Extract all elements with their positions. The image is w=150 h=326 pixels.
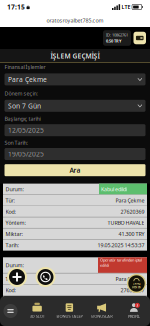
button[interactable]: Add — [7, 267, 27, 287]
staticText: PROFİL — [128, 314, 140, 319]
button[interactable]: BONUS TALEP — [53, 296, 85, 326]
button[interactable]: ID: 10862761 — [103, 30, 131, 46]
staticText: oratosroyalbet785.com — [46, 17, 103, 24]
staticText: Son 7 Gün — [8, 101, 41, 110]
staticText: DESTEK — [132, 285, 141, 289]
staticText: BONUSLAR — [91, 314, 112, 319]
staticText: Ara — [69, 166, 80, 175]
staticText: Para Çekme — [115, 197, 144, 204]
staticText: Durum: — [6, 186, 24, 193]
staticText: 3 — [136, 304, 138, 307]
staticText: Tür: — [6, 275, 15, 282]
button[interactable]: Son 7 Gün — [4, 100, 145, 112]
staticText: CANLI — [132, 282, 140, 285]
staticText: Para Çekme — [8, 75, 47, 84]
button[interactable]: Deposit — [133, 32, 146, 44]
button[interactable]: 3D SLOT — [21, 296, 53, 326]
staticText: Kabul edildi — [101, 186, 127, 193]
staticText: 12/05/2025 — [8, 126, 44, 135]
button[interactable]: Para Çekme — [4, 73, 145, 85]
button[interactable]: BONUSLAR — [85, 296, 118, 326]
staticText: Tarih: — [6, 242, 19, 249]
staticText: TURBO HAVALE — [107, 219, 144, 226]
staticText: BONUS TALEP — [56, 314, 82, 319]
staticText: 27620369 — [120, 208, 144, 215]
staticText: 3D SLOT — [30, 314, 45, 319]
staticText: Durum: — [6, 262, 24, 269]
staticText: 17:15 — [7, 3, 25, 11]
staticText: Tür: — [6, 197, 15, 204]
staticText: LTE — [122, 3, 131, 11]
staticText: 19/05/2025 — [8, 150, 44, 158]
staticText: Son Tarih: — [4, 139, 27, 146]
button[interactable]: Live support — [127, 274, 146, 293]
staticText: İŞLEM GEÇMİŞİ — [50, 52, 99, 60]
staticText: 41.300 TRY — [118, 230, 144, 238]
staticText: 19.05.2025 14:53:37 — [97, 242, 144, 249]
staticText: Miktar: — [6, 230, 23, 238]
button[interactable]: Menu — [0, 296, 21, 326]
staticText: Para Çekme — [115, 275, 144, 282]
staticText: Finansal İşlemler — [4, 63, 45, 71]
staticText: Yöntem: — [6, 219, 26, 226]
staticText: Başlangıç tarihi — [4, 115, 40, 122]
staticText: Kod: — [6, 208, 16, 215]
button[interactable]: WhatsApp support — [35, 267, 55, 287]
staticText: ID: 10862761 — [106, 32, 128, 38]
staticText: Dönem seçin: — [4, 90, 37, 97]
button[interactable]: 3 — [118, 296, 150, 326]
staticText: Kod: — [6, 287, 16, 294]
staticText: 27632187 — [120, 287, 144, 294]
staticText: 0.50 TRY — [106, 38, 122, 44]
staticText: Operatör tarafından iptal edildi — [100, 257, 142, 268]
button[interactable]: Ara — [4, 164, 145, 176]
button[interactable]: 19/05/2025 — [4, 148, 145, 160]
staticText: HEMENODE HAVALE — [94, 298, 144, 305]
button[interactable]: 12/05/2025 — [4, 124, 145, 136]
